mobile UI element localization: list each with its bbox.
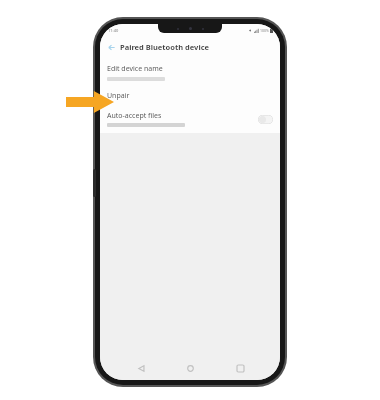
staticText: Paired Bluetooth device — [120, 42, 209, 52]
button[interactable]: Unpair — [100, 88, 280, 104]
staticText: 11:40 — [108, 28, 119, 33]
button[interactable]: Recent apps — [231, 359, 249, 377]
staticText: Edit device name — [107, 64, 163, 74]
button[interactable]: Back — [132, 359, 150, 377]
button[interactable]: Auto-accept files — [100, 109, 280, 129]
button[interactable]: Home — [181, 359, 199, 377]
staticText: Auto-accept files — [107, 111, 162, 121]
button[interactable]: Edit device name — [100, 61, 280, 84]
staticText: Unpair — [107, 91, 130, 101]
button[interactable]: Back — [105, 41, 118, 54]
staticText: 100% — [260, 28, 269, 33]
